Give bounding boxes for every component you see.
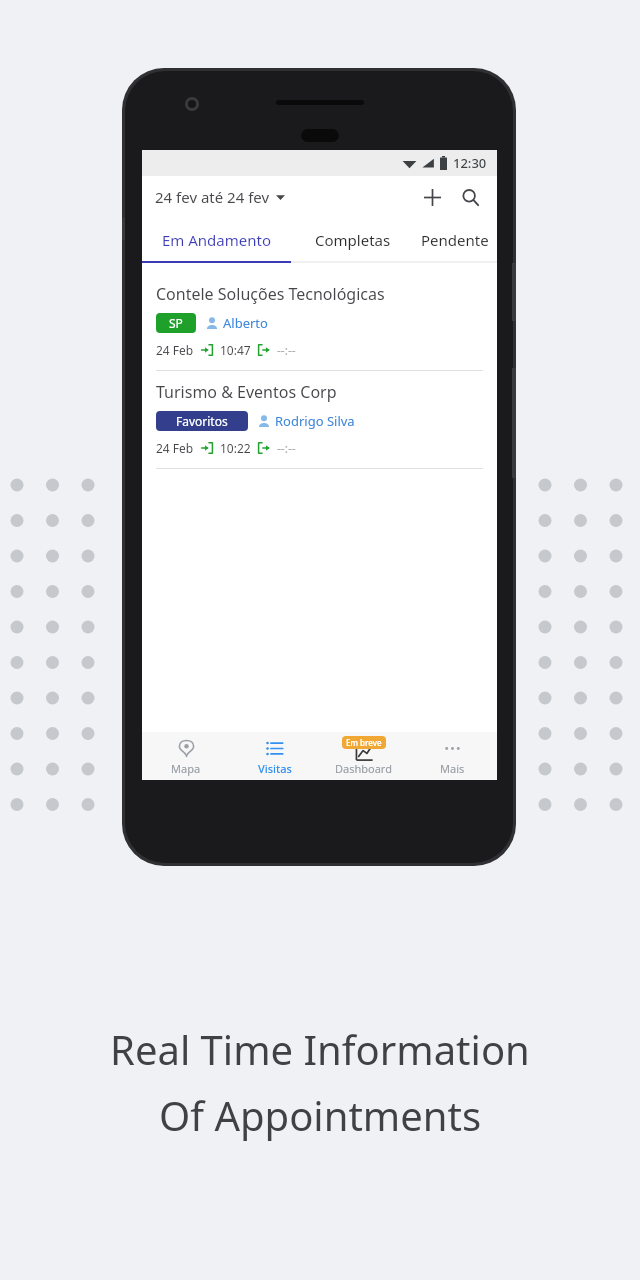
button[interactable]: 24 fev até 24 fev — [155, 187, 285, 207]
staticText: 24 Feb — [156, 342, 194, 358]
button[interactable]: Search — [453, 180, 487, 214]
button[interactable]: Pendente — [415, 218, 497, 261]
staticText: Completas — [315, 230, 391, 250]
staticText: 24 fev até 24 fev — [155, 187, 270, 207]
staticText: Mais — [440, 761, 465, 776]
button[interactable]: Contele Soluções Tecnológicas — [142, 273, 497, 370]
staticText: Dashboard — [335, 761, 392, 776]
button[interactable]: Mapa — [142, 732, 230, 780]
button[interactable]: Add — [415, 180, 449, 214]
button[interactable]: Visitas — [230, 732, 319, 780]
staticText: Rodrigo Silva — [275, 412, 355, 430]
staticText: Pendente — [421, 230, 489, 250]
staticText: Visitas — [258, 761, 292, 776]
button[interactable]: Em breve — [319, 732, 408, 780]
staticText: Of Appointments — [159, 1088, 482, 1142]
staticText: 10:22 — [220, 440, 251, 456]
button[interactable]: Turismo & Eventos Corp — [142, 371, 497, 468]
button[interactable]: Mais — [408, 732, 497, 780]
staticText: Contele Soluções Tecnológicas — [156, 283, 385, 305]
staticText: Em Andamento — [162, 230, 272, 250]
staticText: Turismo & Eventos Corp — [156, 381, 337, 403]
staticText: --:-- — [277, 342, 296, 358]
button[interactable]: Completas — [291, 218, 415, 261]
staticText: Real Time Information — [110, 1022, 530, 1076]
staticText: SP — [169, 315, 183, 331]
staticText: 24 Feb — [156, 440, 194, 456]
staticText: --:-- — [277, 440, 296, 456]
button[interactable]: Em Andamento — [142, 218, 291, 261]
staticText: 12:30 — [453, 154, 487, 172]
staticText: Mapa — [171, 761, 201, 776]
staticText: Alberto — [223, 314, 268, 332]
staticText: 10:47 — [220, 342, 251, 358]
staticText: Em breve — [346, 737, 382, 748]
staticText: Favoritos — [176, 413, 228, 429]
